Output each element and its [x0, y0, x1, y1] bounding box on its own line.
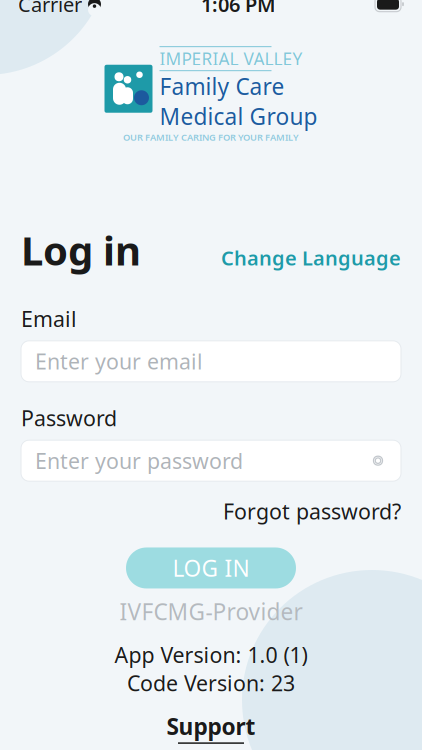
button[interactable]: Support — [166, 711, 255, 744]
staticText: Family Care — [159, 71, 284, 101]
button[interactable]: Change Language — [221, 244, 401, 271]
staticText: App Version: 1.0 (1) — [114, 641, 307, 669]
staticText: Enter your email — [35, 347, 203, 375]
staticText: IVFCMG-Provider — [119, 596, 302, 627]
button[interactable]: Forgot password? — [223, 497, 401, 525]
button[interactable]: LOG IN — [126, 547, 296, 588]
staticText: Password — [21, 404, 117, 432]
staticText: Medical Group — [159, 101, 317, 131]
staticText: Code Version: 23 — [127, 669, 295, 697]
staticText: Carrier — [18, 0, 82, 17]
staticText: Support — [166, 711, 255, 741]
staticText: 1:06 PM — [201, 0, 276, 17]
staticText: LOG IN — [172, 553, 249, 583]
staticText: OUR FAMILY CARING FOR YOUR FAMILY — [123, 131, 299, 143]
staticText: Enter your password — [35, 446, 243, 475]
button[interactable]: Enter your password — [21, 440, 401, 481]
staticText: Forgot password? — [223, 497, 401, 525]
staticText: Change Language — [221, 244, 401, 271]
staticText: Email — [21, 304, 77, 333]
staticText: IMPERIAL VALLEY — [159, 47, 302, 70]
button[interactable]: Enter your email — [21, 341, 401, 382]
staticText: Log in — [21, 223, 141, 276]
